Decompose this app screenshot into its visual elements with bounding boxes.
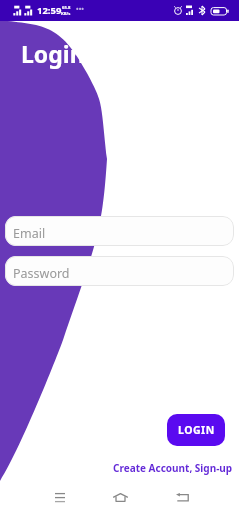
staticText: Create Account, Sign-up [113,461,233,475]
button[interactable]: LOGIN [167,414,225,446]
button[interactable]: Back [166,483,198,512]
button[interactable]: Password [5,256,234,286]
staticText: KB/s [61,11,71,17]
button[interactable]: Home [104,483,136,512]
button[interactable]: Create Account, Sign-up [113,461,233,475]
staticText: 65.8 [62,5,71,11]
staticText: ••• [76,5,84,15]
staticText: LOGIN [178,423,215,437]
staticText: 12:59 [37,4,62,17]
button[interactable]: Recent apps [44,483,76,512]
staticText: Password [13,265,70,282]
button[interactable]: Email [5,216,234,246]
staticText: Email [13,225,46,242]
staticText: Login [21,38,85,69]
